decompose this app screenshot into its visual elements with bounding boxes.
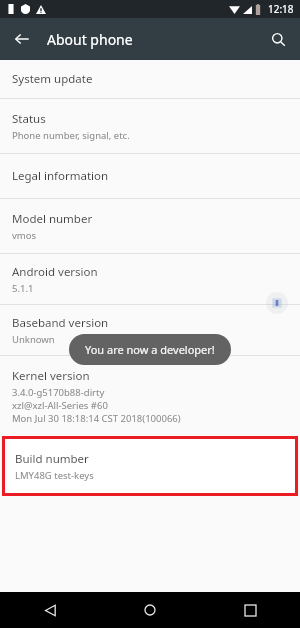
- button[interactable]: System update: [0, 60, 300, 98]
- button[interactable]: You are now a developer!: [69, 334, 231, 365]
- staticText: Legal information: [12, 168, 109, 184]
- staticText: Android version: [12, 264, 98, 280]
- button[interactable]: Kernel version: [0, 356, 300, 436]
- staticText: 5.1.1: [12, 282, 34, 295]
- staticText: Unknown: [12, 333, 55, 346]
- staticText: Build number: [15, 451, 89, 467]
- button[interactable]: Build number: [5, 439, 295, 493]
- button[interactable]: Legal information: [0, 154, 300, 198]
- button[interactable]: Recent apps: [200, 592, 300, 628]
- button[interactable]: Home: [100, 592, 200, 628]
- button[interactable]: Android version: [0, 254, 300, 304]
- staticText: System update: [12, 71, 93, 87]
- staticText: Phone number, signal, etc.: [12, 129, 130, 142]
- button[interactable]: Status: [0, 99, 300, 153]
- staticText: xzl@xzl-All-Series #60: [12, 399, 108, 412]
- button[interactable]: Model number: [0, 199, 300, 253]
- staticText: Baseband version: [12, 315, 109, 331]
- button[interactable]: Search: [262, 23, 294, 55]
- staticText: vmos: [12, 229, 37, 242]
- staticText: 12:18: [268, 2, 294, 16]
- staticText: 3.4.0-g5170b88-dirty: [12, 386, 105, 399]
- staticText: About phone: [47, 30, 133, 49]
- staticText: LMY48G test-keys: [15, 469, 94, 482]
- staticText: Kernel version: [12, 368, 90, 384]
- staticText: You are now a developer!: [85, 342, 215, 357]
- button[interactable]: Back: [0, 592, 100, 628]
- button[interactable]: Back: [6, 23, 38, 55]
- button[interactable]: Baseband version: [0, 305, 300, 355]
- staticText: Status: [12, 111, 46, 127]
- staticText: Mon Jul 30 18:18:14 CST 2018(100066): [12, 412, 181, 425]
- staticText: Model number: [12, 211, 93, 227]
